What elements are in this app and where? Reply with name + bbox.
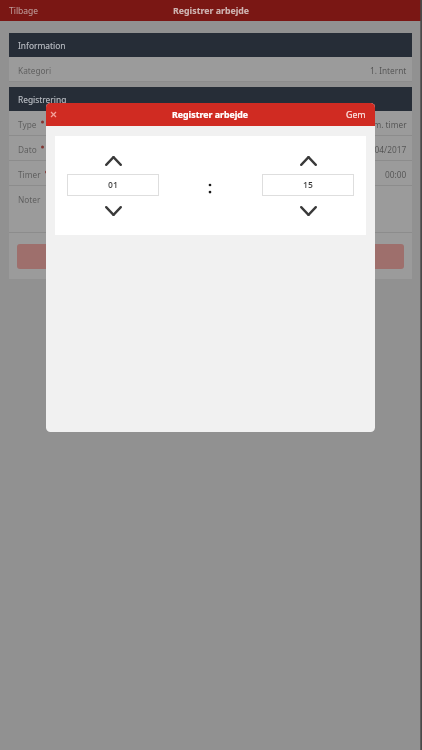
- button[interactable]: Luk: [46, 105, 63, 124]
- staticText: 15: [303, 179, 313, 191]
- button[interactable]: 01: [67, 174, 159, 196]
- staticText: Information: [18, 40, 66, 51]
- button[interactable]: Tilbage: [0, 2, 48, 20]
- staticText: Registrering: [18, 94, 67, 105]
- button[interactable]: Forøg: [300, 156, 317, 166]
- button[interactable]: Kategori: [9, 57, 412, 82]
- button[interactable]: 15: [262, 174, 354, 196]
- staticText: Kategori: [18, 65, 52, 76]
- button[interactable]: Timer: [9, 161, 412, 186]
- staticText: Dato: [18, 144, 37, 155]
- staticText: 1. Internt: [370, 65, 407, 76]
- button[interactable]: Type: [9, 111, 412, 136]
- staticText: Alm. timer: [366, 119, 407, 130]
- staticText: Tilbage: [9, 5, 39, 17]
- button[interactable]: Formindsk: [105, 206, 122, 216]
- button[interactable]: Dato: [9, 136, 412, 161]
- staticText: 00:00: [385, 169, 407, 180]
- button[interactable]: Gem: [338, 105, 375, 125]
- button[interactable]: Noter: [9, 186, 412, 233]
- button[interactable]: Formindsk: [300, 206, 317, 216]
- button[interactable]: Forøg: [105, 156, 122, 166]
- staticText: Registrer arbejde: [172, 109, 249, 121]
- staticText: Gem: [346, 109, 366, 121]
- staticText: Timer: [18, 169, 41, 180]
- staticText: Type: [18, 119, 37, 130]
- staticText: 26/04/2017: [362, 144, 407, 155]
- staticText: Noter: [18, 194, 41, 205]
- staticText: 01: [108, 179, 118, 191]
- button[interactable]: [17, 244, 404, 269]
- staticText: Registrer arbejde: [173, 5, 250, 17]
